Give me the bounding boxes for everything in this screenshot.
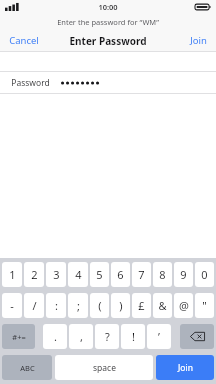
button[interactable]: ABC: [2, 355, 52, 380]
staticText: .: [54, 329, 57, 344]
staticText: Join: [190, 34, 207, 47]
button[interactable]: Cancel: [0, 31, 48, 50]
staticText: £: [138, 298, 145, 313]
button[interactable]: -: [2, 293, 22, 318]
button[interactable]: Symbols: [2, 324, 35, 349]
staticText: 4: [75, 267, 82, 282]
staticText: ’: [158, 329, 160, 344]
button[interactable]: :: [46, 293, 66, 318]
staticText: &: [158, 298, 167, 313]
button[interactable]: £: [132, 293, 151, 318]
button[interactable]: 9: [174, 262, 193, 287]
staticText: space: [93, 362, 116, 374]
button[interactable]: Join: [181, 31, 216, 50]
staticText: Enter the password for “WM”: [57, 17, 159, 27]
staticText: Join: [178, 362, 193, 374]
staticText: ,: [80, 329, 83, 344]
staticText: ABC: [20, 363, 35, 373]
button[interactable]: ;: [68, 293, 88, 318]
button[interactable]: ): [111, 293, 130, 318]
button[interactable]: space: [55, 355, 153, 380]
button[interactable]: ,: [69, 324, 93, 349]
staticText: 2: [31, 267, 38, 282]
staticText: 6: [117, 267, 124, 282]
button[interactable]: Join: [156, 355, 214, 380]
staticText: /: [32, 298, 37, 313]
button[interactable]: 4: [68, 262, 88, 287]
button[interactable]: 0: [195, 262, 214, 287]
button[interactable]: /: [24, 293, 44, 318]
staticText: ": [202, 298, 207, 313]
staticText: #+=: [12, 332, 26, 342]
button[interactable]: 3: [46, 262, 66, 287]
button[interactable]: .: [43, 324, 67, 349]
button[interactable]: ": [195, 293, 214, 318]
staticText: ): [119, 298, 123, 313]
staticText: @: [179, 298, 189, 313]
button[interactable]: 5: [90, 262, 109, 287]
button[interactable]: 2: [24, 262, 44, 287]
button[interactable]: (: [90, 293, 109, 318]
staticText: 10:00: [98, 2, 118, 12]
button[interactable]: 7: [132, 262, 151, 287]
button[interactable]: ’: [147, 324, 171, 349]
staticText: :: [55, 298, 58, 313]
button[interactable]: Backspace: [180, 324, 214, 349]
staticText: Cancel: [9, 34, 39, 47]
staticText: 8: [159, 267, 166, 282]
staticText: ;: [77, 298, 80, 313]
button[interactable]: 8: [153, 262, 172, 287]
staticText: 1: [9, 267, 16, 282]
staticText: 9: [180, 267, 187, 282]
staticText: ?: [105, 329, 110, 344]
button[interactable]: 1: [2, 262, 22, 287]
button[interactable]: @: [174, 293, 193, 318]
staticText: !: [132, 329, 135, 344]
staticText: (: [98, 298, 102, 313]
button[interactable]: Password: [0, 72, 216, 93]
button[interactable]: ?: [95, 324, 119, 349]
staticText: -: [10, 298, 14, 313]
staticText: 3: [53, 267, 60, 282]
staticText: 5: [96, 267, 103, 282]
staticText: Enter Password: [69, 34, 147, 48]
button[interactable]: 6: [111, 262, 130, 287]
staticText: 7: [138, 267, 145, 282]
staticText: 0: [201, 267, 208, 282]
staticText: Password: [11, 77, 50, 89]
button[interactable]: !: [121, 324, 145, 349]
button[interactable]: &: [153, 293, 172, 318]
